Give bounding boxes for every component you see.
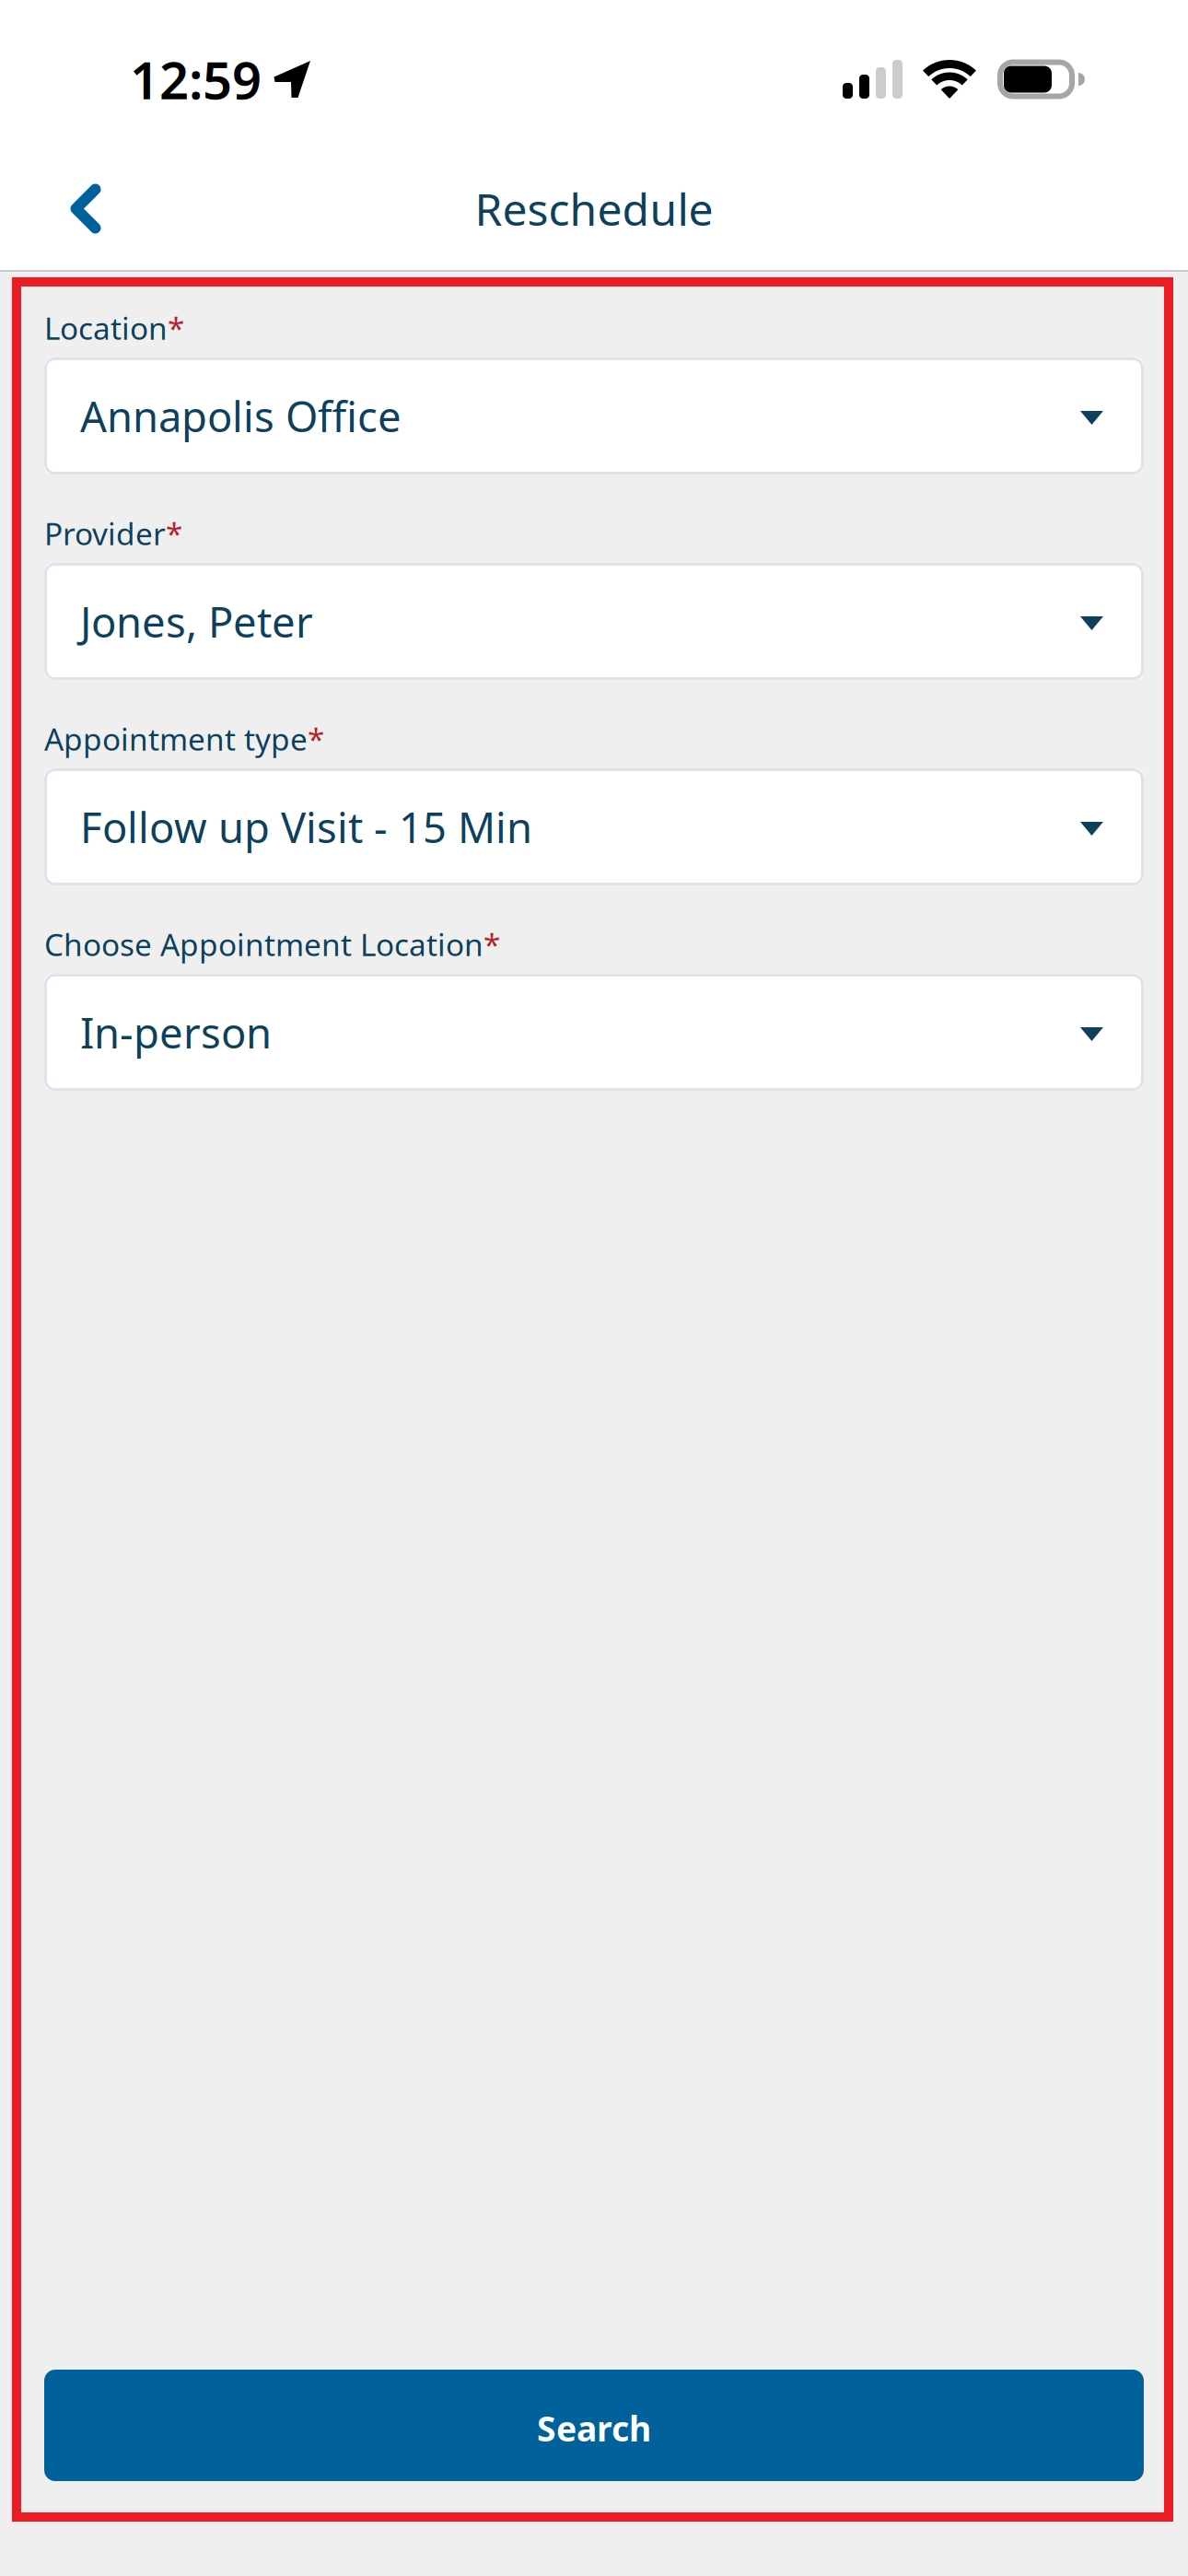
button[interactable]: In-person (44, 974, 1144, 1091)
staticText: * (166, 513, 182, 554)
button[interactable]: Annapolis Office (44, 357, 1144, 474)
staticText: * (308, 718, 324, 759)
staticText: Reschedule (475, 179, 713, 238)
button[interactable]: Jones, Peter (44, 563, 1144, 680)
staticText: Choose Appointment Location (44, 924, 483, 965)
staticText: Location (44, 307, 168, 348)
staticText: 12:59 (130, 45, 262, 114)
staticText: * (483, 924, 500, 965)
button[interactable]: Follow up Visit - 15 Min (44, 768, 1144, 885)
staticText: Follow up Visit - 15 Min (80, 799, 532, 855)
staticText: Provider (44, 513, 166, 554)
staticText: Annapolis Office (80, 388, 402, 444)
staticText: * (168, 307, 184, 348)
staticText: Search (537, 2405, 651, 2451)
staticText: Appointment type (44, 718, 308, 759)
staticText: In-person (80, 1005, 272, 1060)
button[interactable]: Search (44, 2370, 1144, 2481)
button[interactable]: Back (35, 158, 136, 259)
staticText: Jones, Peter (80, 594, 313, 649)
